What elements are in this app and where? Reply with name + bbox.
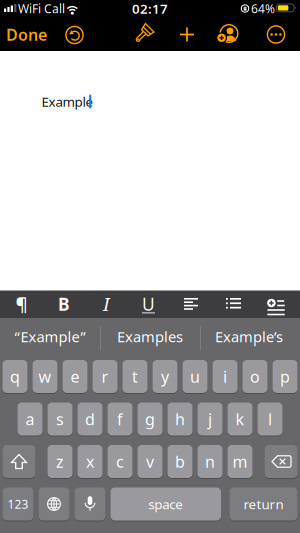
staticText: ¶ [15,292,27,316]
button[interactable]: v [137,444,162,478]
button[interactable]: a [17,402,42,436]
staticText: d [85,408,95,430]
staticText: x [86,451,94,472]
button[interactable]: n [197,444,222,478]
staticText: U [142,292,155,315]
staticText: j [208,408,212,430]
button[interactable]: Add [175,22,199,46]
staticText: a [25,408,34,430]
button[interactable]: u [182,359,207,393]
button[interactable]: b [167,444,192,478]
button[interactable]: Next Keyboard [38,487,69,521]
button[interactable]: o [242,359,267,393]
button[interactable]: x [77,444,102,478]
staticText: c [116,451,124,472]
button[interactable]: z [47,444,72,478]
staticText: y [161,366,169,387]
button[interactable]: Dictate [74,487,105,521]
staticText: Example [41,93,93,110]
staticText: r [101,366,108,387]
button[interactable]: f [107,402,132,436]
button[interactable]: h [167,402,192,436]
staticText: return [243,495,283,513]
button[interactable]: space [110,487,221,521]
staticText: p [280,366,290,387]
button[interactable]: y [152,359,177,393]
staticText: q [10,366,20,387]
button[interactable]: q [2,359,27,393]
staticText: 123 [7,496,28,512]
staticText: n [205,451,215,472]
button[interactable]: Add People [216,21,242,47]
button[interactable]: return [229,487,297,521]
button[interactable]: m [227,444,252,478]
button[interactable]: Shift [2,444,35,478]
button[interactable]: c [107,444,132,478]
staticText: b [175,451,185,472]
button[interactable]: Done [4,19,48,49]
button[interactable]: Alignment [183,297,199,311]
button[interactable]: Delete [264,444,297,478]
staticText: Done [6,24,47,45]
staticText: “ Example ” [14,327,85,346]
button[interactable]: Insert [267,299,285,317]
button[interactable]: l [257,402,282,436]
button[interactable]: “ Example ” [2,320,98,352]
staticText: space [148,495,183,513]
staticText: v [146,451,154,472]
button[interactable]: d [77,402,102,436]
button[interactable]: Paragraph Styles [6,291,36,317]
button[interactable]: j [197,402,222,436]
button[interactable]: 123 [2,487,33,521]
staticText: w [38,366,51,387]
button[interactable]: w [32,359,57,393]
button[interactable]: Italic [91,291,121,317]
staticText: o [250,366,260,387]
staticText: z [56,451,64,472]
button[interactable]: Examples [102,320,198,352]
button[interactable]: i [212,359,237,393]
staticText: WiFi Call [18,0,65,16]
button[interactable]: Underline [133,291,163,317]
button[interactable]: g [137,402,162,436]
staticText: e [70,366,79,387]
staticText: u [190,366,200,387]
button[interactable]: t [122,359,147,393]
staticText: s [56,408,64,430]
staticText: l [268,408,272,430]
button[interactable]: List [225,297,241,311]
staticText: t [132,366,138,387]
staticText: 64% [251,0,275,16]
button[interactable]: s [47,402,72,436]
staticText: Examples [117,327,183,346]
staticText: g [145,408,155,430]
staticText: m [232,451,247,472]
button[interactable]: More [264,22,288,46]
staticText: f [117,408,123,430]
button[interactable]: r [92,359,117,393]
staticText: 02:17 [132,0,168,17]
staticText: i [223,366,227,387]
staticText: B [58,292,70,315]
staticText: k [235,408,244,430]
button[interactable]: k [227,402,252,436]
staticText: I [103,292,110,316]
staticText: h [175,408,185,430]
button[interactable]: Example’s [201,320,297,352]
button[interactable]: e [62,359,87,393]
button[interactable]: p [272,359,297,393]
button[interactable]: Undo [62,23,86,47]
button[interactable]: Markup [131,22,155,46]
staticText: Example’s [215,327,283,346]
button[interactable]: Bold [49,291,79,317]
